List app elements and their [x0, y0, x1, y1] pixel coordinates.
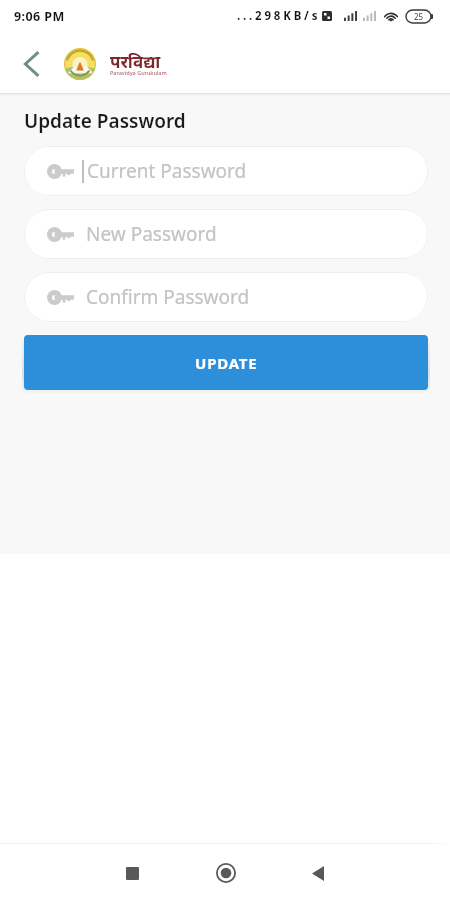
button[interactable]: UPDATE — [24, 335, 428, 390]
staticText: 25 — [414, 11, 424, 22]
button[interactable]: Confirm Password — [24, 272, 428, 322]
staticText: Paravidya Gurukulam — [110, 69, 167, 76]
staticText: Confirm Password — [86, 284, 250, 310]
button[interactable]: New Password — [24, 209, 428, 259]
button[interactable]: Current Password — [24, 146, 428, 196]
button[interactable]: Recent apps — [106, 849, 158, 897]
button[interactable]: Home — [200, 849, 252, 897]
staticText: Update Password — [24, 108, 186, 134]
staticText: ...298KB/s — [237, 8, 321, 24]
staticText: परविद्या — [110, 50, 161, 73]
button[interactable]: Back — [7, 42, 51, 86]
button[interactable]: Back — [292, 849, 344, 897]
staticText: New Password — [86, 221, 217, 247]
staticText: UPDATE — [195, 353, 258, 373]
staticText: Current Password — [87, 158, 247, 184]
staticText: 9:06 PM — [14, 8, 65, 25]
